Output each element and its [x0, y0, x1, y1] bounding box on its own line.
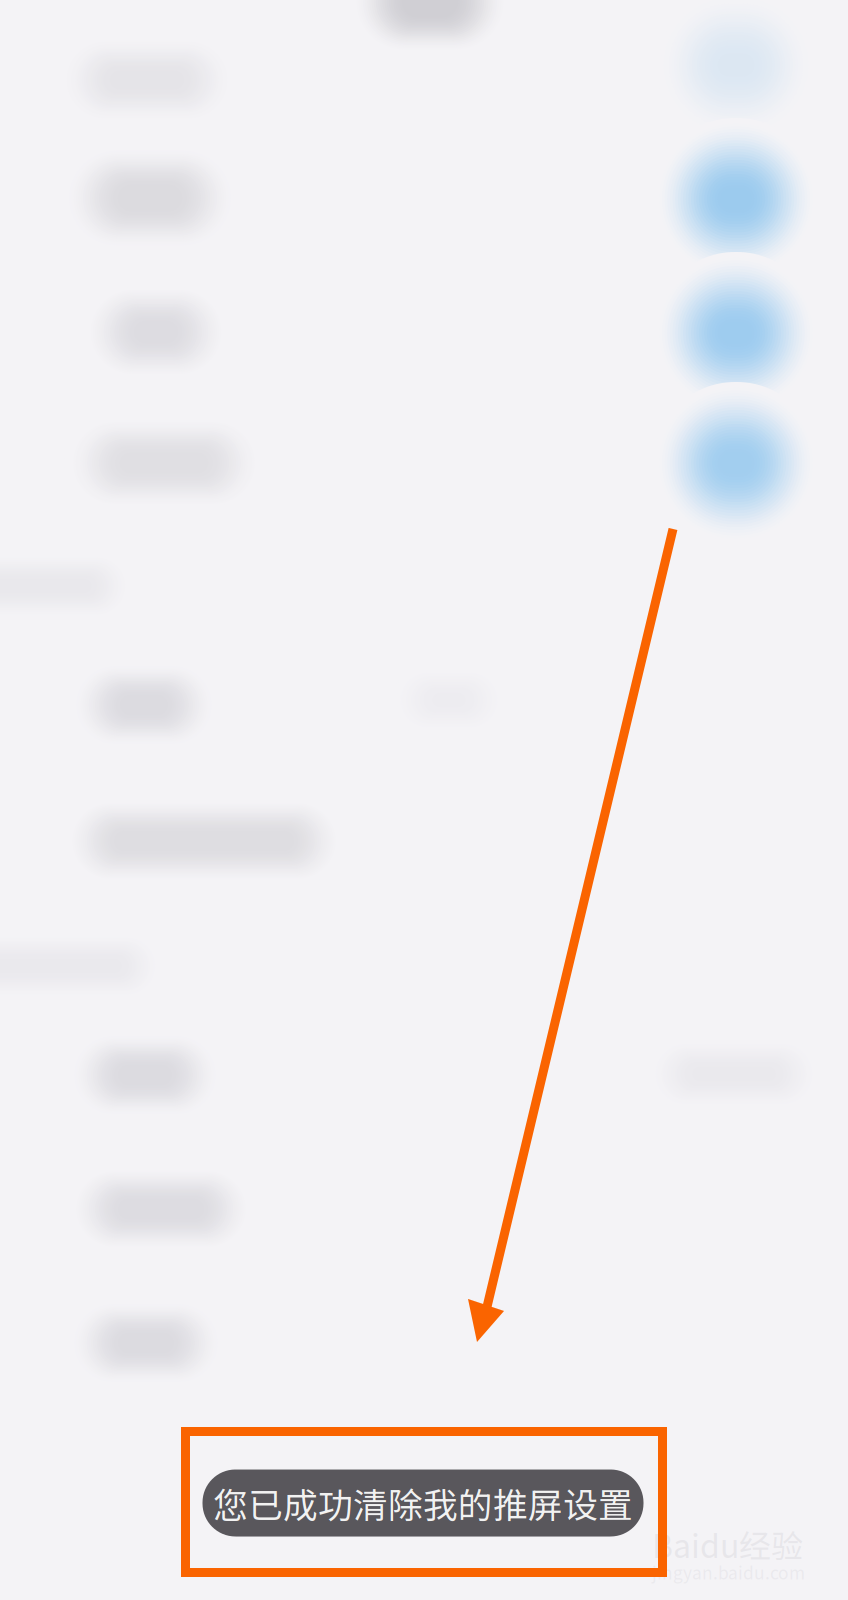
staticText: Baidu经验	[652, 1521, 803, 1567]
staticText: jingyan.baidu.com	[652, 1559, 805, 1585]
staticText: 您已成功清除我的推屏设置	[213, 1478, 633, 1528]
